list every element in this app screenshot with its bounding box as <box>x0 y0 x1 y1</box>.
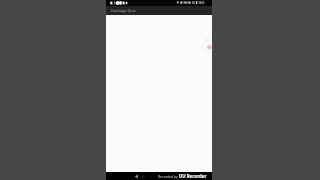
button[interactable]: Recent apps <box>147 173 154 180</box>
staticText: DU Recorder <box>179 173 207 179</box>
button[interactable]: Home <box>140 173 147 180</box>
button[interactable]: Back <box>133 173 140 180</box>
staticText: Recorded by <box>158 174 178 179</box>
button[interactable]: Add <box>200 38 212 52</box>
staticText: Garbage Quiz <box>111 8 136 13</box>
